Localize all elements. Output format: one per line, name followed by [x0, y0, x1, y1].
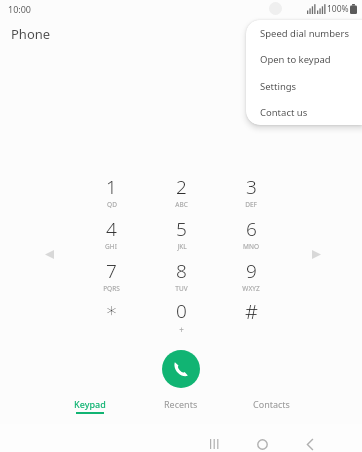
staticText: Recents — [164, 398, 198, 410]
staticText: Keypad — [74, 398, 106, 410]
button[interactable]: 6 — [222, 216, 280, 256]
staticText: 5 — [176, 216, 187, 242]
staticText: Phone — [11, 25, 51, 43]
button[interactable]: Back — [296, 430, 324, 452]
button[interactable]: # — [222, 298, 280, 338]
staticText: 2 — [176, 174, 187, 200]
button[interactable]: Home — [248, 430, 276, 452]
staticText: 6 — [246, 216, 257, 242]
button[interactable]: 9 — [222, 258, 280, 298]
staticText: Open to keypad — [260, 53, 331, 66]
staticText: 0 — [176, 298, 187, 324]
button[interactable]: 5 — [152, 216, 210, 256]
staticText: MNO — [243, 242, 259, 251]
staticText: ∗ — [105, 298, 118, 321]
button[interactable]: 1 — [82, 174, 140, 214]
staticText: WXYZ — [242, 284, 260, 293]
staticText: 7 — [106, 258, 117, 284]
staticText: DEF — [245, 200, 257, 209]
staticText: GHI — [105, 242, 117, 251]
staticText: 10:00 — [8, 3, 32, 15]
button[interactable]: 8 — [152, 258, 210, 298]
staticText: 1 — [106, 174, 117, 200]
button[interactable]: 3 — [222, 174, 280, 214]
staticText: TUV — [175, 284, 188, 293]
button[interactable]: Call — [162, 350, 200, 388]
button[interactable]: Settings — [246, 73, 362, 99]
staticText: JKL — [177, 242, 187, 251]
button[interactable]: Keypad — [50, 398, 130, 420]
staticText: ABC — [175, 200, 188, 209]
button[interactable]: Contacts — [231, 398, 311, 420]
staticText: QD — [107, 200, 117, 209]
staticText: 100% — [327, 3, 349, 15]
staticText: # — [245, 298, 258, 325]
staticText: 9 — [246, 258, 257, 284]
button[interactable]: ∗ — [82, 298, 140, 338]
staticText: Settings — [260, 80, 297, 93]
button[interactable]: 2 — [152, 174, 210, 214]
button[interactable]: Speed dial numbers — [246, 20, 362, 46]
staticText: Contact us — [260, 106, 308, 119]
staticText: 3 — [246, 174, 257, 200]
button[interactable]: 7 — [82, 258, 140, 298]
staticText: PQRS — [103, 284, 120, 293]
button[interactable]: Contact us — [246, 99, 362, 125]
button[interactable]: Next — [307, 245, 325, 263]
staticText: 8 — [176, 258, 187, 284]
button[interactable]: 0 — [152, 298, 210, 338]
button[interactable]: Recents — [141, 398, 221, 420]
button[interactable]: Recent apps — [200, 430, 228, 452]
staticText: + — [179, 324, 184, 335]
button[interactable]: 4 — [82, 216, 140, 256]
staticText: 4 — [106, 216, 117, 242]
staticText: Contacts — [253, 398, 290, 410]
button[interactable]: Open to keypad — [246, 46, 362, 72]
button[interactable]: Previous — [40, 245, 58, 263]
staticText: Speed dial numbers — [260, 27, 349, 40]
